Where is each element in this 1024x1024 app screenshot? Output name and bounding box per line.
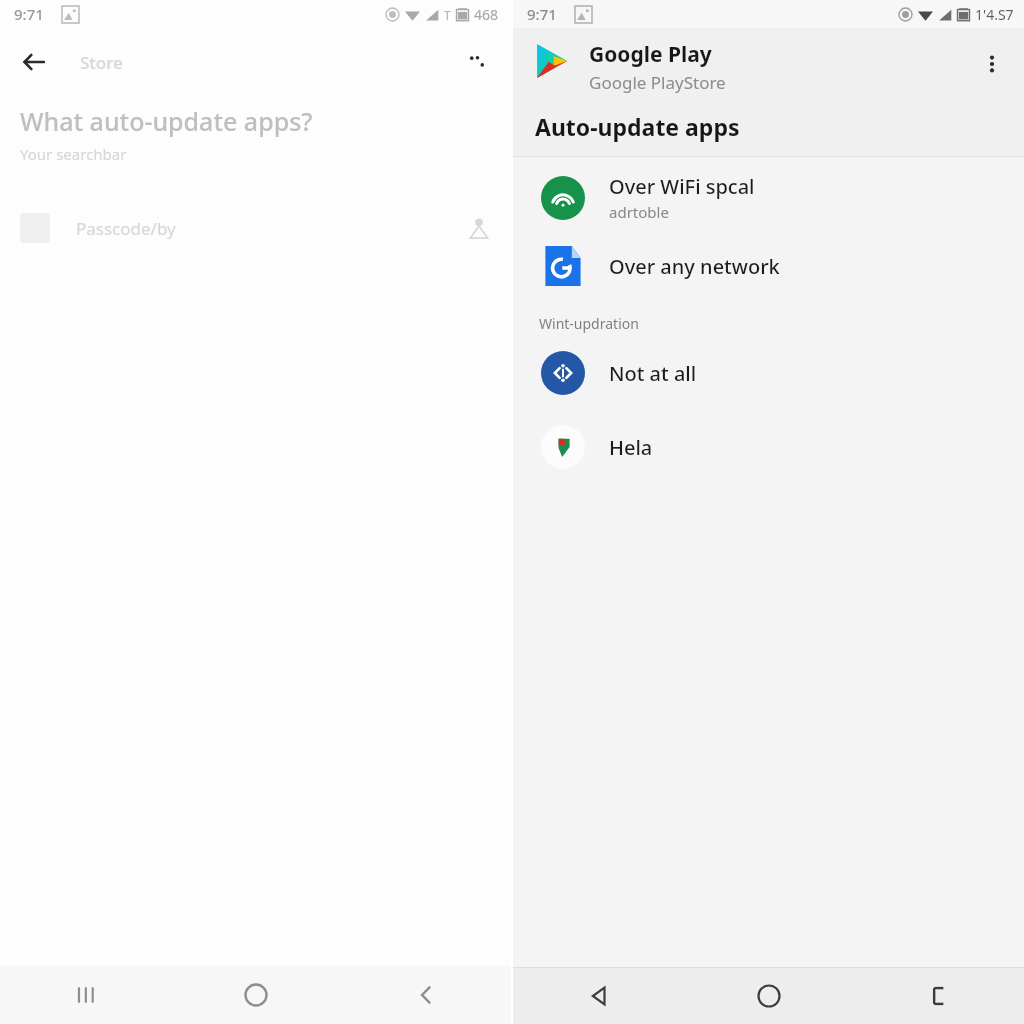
staticText: Google Play — [589, 40, 712, 69]
staticText: Your searchbar — [20, 144, 127, 164]
staticText: adrtoble — [609, 202, 669, 222]
button[interactable]: Recents — [0, 966, 171, 1024]
button[interactable]: More options — [457, 42, 497, 82]
button[interactable]: Home — [171, 966, 341, 1024]
button[interactable]: Back — [341, 966, 511, 1024]
button[interactable]: Not at all — [513, 349, 1024, 397]
button[interactable]: Over any network — [513, 242, 1024, 290]
staticText: Hela — [609, 434, 653, 461]
staticText: Passcode/by — [76, 217, 176, 240]
staticText: Auto-update apps — [535, 111, 740, 142]
button[interactable]: Back — [513, 968, 684, 1024]
button[interactable]: Recents — [854, 968, 1024, 1024]
staticText: Over any network — [609, 253, 780, 280]
staticText: Google PlayStore — [589, 71, 726, 94]
staticText: 1'4.S7 — [975, 5, 1014, 24]
button[interactable]: Back — [14, 42, 54, 82]
staticText: 9:71 — [14, 4, 44, 24]
staticText: Store — [80, 51, 123, 74]
button[interactable]: More options — [972, 44, 1012, 84]
button[interactable]: Over WiFi spcal — [513, 173, 1024, 222]
staticText: Wint-updration — [539, 314, 639, 333]
staticText: 468 — [474, 5, 499, 24]
button[interactable]: Passcode/by — [0, 200, 511, 256]
staticText: Over WiFi spcal — [609, 173, 755, 200]
staticText: T — [444, 7, 451, 23]
staticText: 9:71 — [527, 4, 557, 24]
staticText: Not at all — [609, 360, 697, 387]
button[interactable]: Hela — [513, 423, 1024, 471]
button[interactable]: Home — [684, 968, 854, 1024]
staticText: What auto-update apps? — [20, 104, 313, 138]
